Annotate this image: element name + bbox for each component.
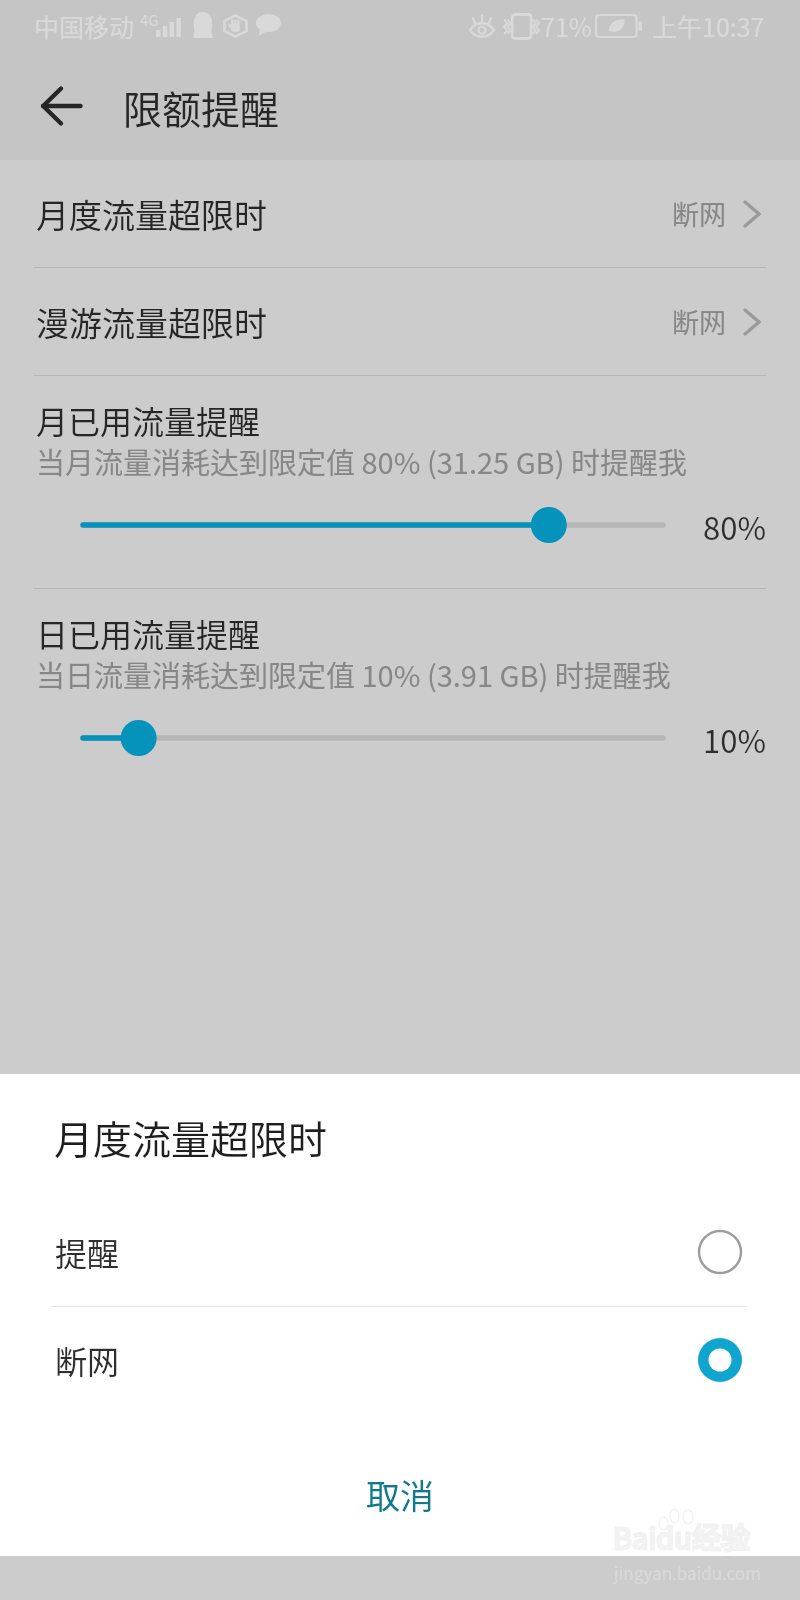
staticText: 上午10:37 — [652, 8, 765, 44]
button[interactable]: 漫游流量超限时 — [0, 268, 800, 375]
button[interactable]: 月度流量超限时 — [0, 160, 800, 267]
staticText: 当月流量消耗达到限定值 80% (31.25 GB) 时提醒我 — [36, 440, 687, 482]
staticText: 日已用流量提醒 — [36, 610, 261, 656]
staticText: 10% — [660, 717, 766, 762]
staticText: 当日流量消耗达到限定值 10% (3.91 GB) 时提醒我 — [36, 653, 671, 695]
staticText: 4G — [140, 9, 159, 31]
staticText: 中国移动 — [34, 8, 135, 44]
button[interactable]: Back — [31, 76, 91, 136]
staticText: 月度流量超限时 — [54, 1109, 328, 1165]
staticText: 漫游流量超限时 — [36, 298, 267, 346]
button[interactable]: 月已用流量提醒 — [0, 376, 800, 588]
button[interactable]: 断网 — [0, 1306, 800, 1414]
staticText: Baidu经验 — [613, 1515, 750, 1557]
button[interactable]: 取消 — [0, 1440, 800, 1556]
staticText: jingyan.baidu.com — [614, 1560, 761, 1585]
staticText: 71% — [541, 8, 592, 44]
staticText: 取消 — [366, 1470, 434, 1519]
staticText: 断网 — [55, 1337, 120, 1383]
button[interactable]: 日已用流量提醒 — [0, 589, 800, 801]
staticText: 月已用流量提醒 — [36, 397, 261, 443]
staticText: 提醒 — [55, 1229, 120, 1275]
button[interactable]: 提醒 — [0, 1198, 800, 1306]
staticText: 断网 — [672, 302, 726, 341]
staticText: 断网 — [672, 194, 726, 233]
staticText: 80% — [660, 504, 766, 549]
staticText: 月度流量超限时 — [36, 190, 267, 238]
staticText: 限额提醒 — [123, 79, 280, 135]
